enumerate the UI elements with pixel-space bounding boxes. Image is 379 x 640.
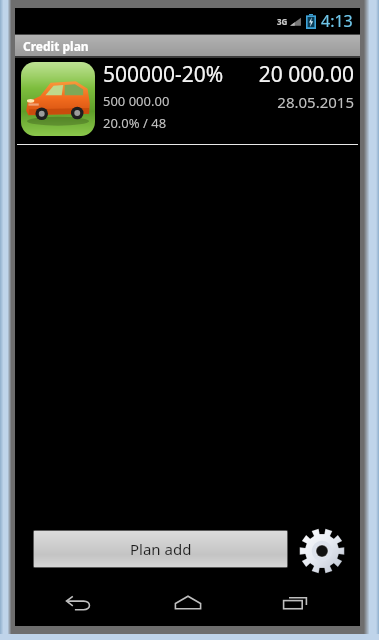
staticText: Plan add [130, 539, 192, 559]
button[interactable]: 500000-20% [15, 58, 360, 144]
staticText: Credit plan [23, 38, 89, 54]
button[interactable]: Back [37, 580, 123, 626]
staticText: 3G [277, 16, 288, 27]
button[interactable]: Settings [296, 525, 348, 577]
button[interactable]: Plan add [34, 531, 287, 567]
button[interactable]: Recent apps [252, 580, 338, 626]
staticText: 20.0% / 48 [103, 114, 167, 132]
staticText: 500000-20% [103, 60, 258, 89]
staticText: 28.05.2015 [277, 92, 354, 112]
button[interactable]: Home [145, 580, 231, 626]
staticText: 500 000.00 [103, 92, 277, 110]
staticText: 4:13 [321, 10, 353, 32]
staticText: 20 000.00 [258, 60, 354, 89]
